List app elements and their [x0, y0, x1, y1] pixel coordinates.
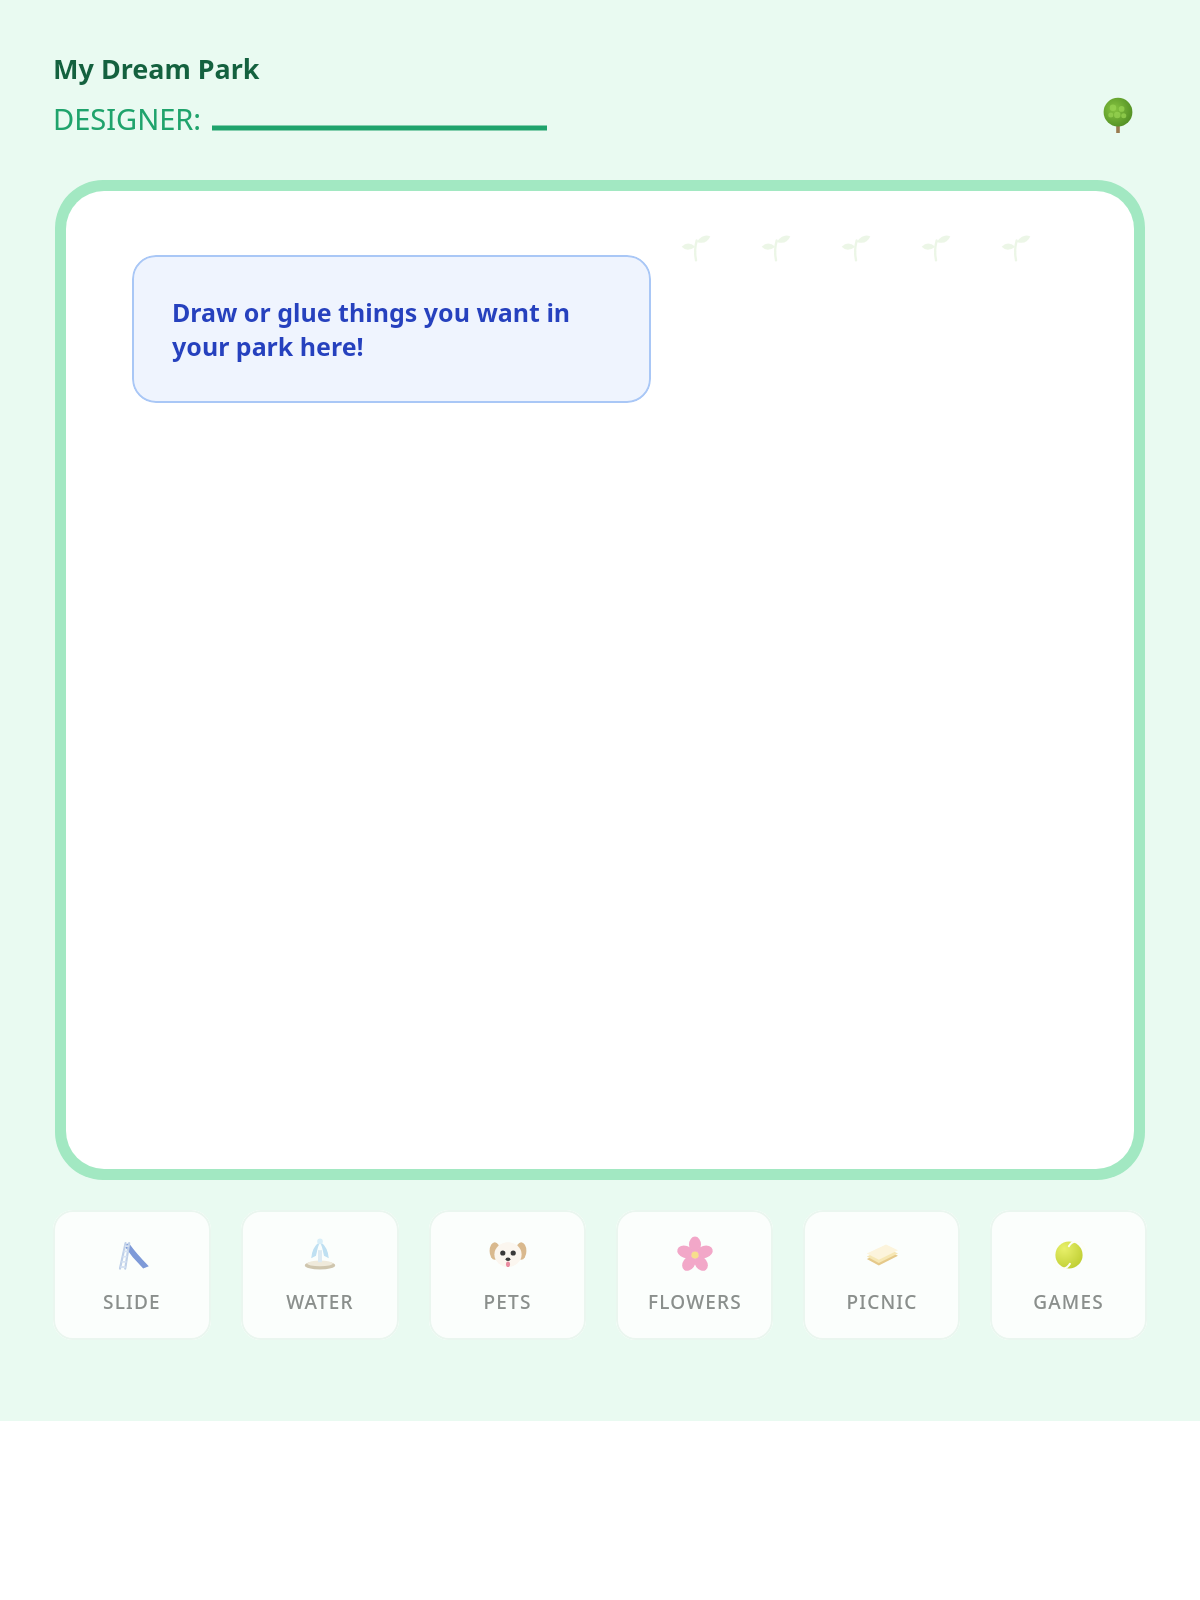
staticText: WATER [286, 1289, 354, 1315]
staticText: SLIDE [103, 1289, 161, 1315]
button[interactable]: Draw or glue things you want in your par… [55, 180, 1145, 1180]
staticText: FLOWERS [648, 1289, 742, 1315]
button[interactable]: Park tree [1096, 93, 1140, 137]
staticText: My Dream Park [53, 50, 260, 87]
button[interactable]: SLIDE [53, 1210, 211, 1340]
button[interactable]: PICNIC [803, 1210, 960, 1340]
staticText: PICNIC [846, 1289, 918, 1315]
staticText: Draw or glue things you want in your par… [172, 295, 611, 364]
button[interactable]: FLOWERS [616, 1210, 773, 1340]
button[interactable]: Draw or glue things you want in your par… [132, 255, 651, 403]
button[interactable]: WATER [241, 1210, 399, 1340]
staticText: PETS [483, 1289, 532, 1315]
button[interactable]: GAMES [990, 1210, 1147, 1340]
staticText: GAMES [1033, 1289, 1104, 1315]
button[interactable]: PETS [429, 1210, 586, 1340]
staticText: DESIGNER: [53, 99, 202, 138]
